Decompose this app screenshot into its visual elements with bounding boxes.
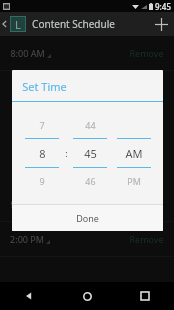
button[interactable]: 7 [25,112,59,194]
button[interactable]: 44 [73,112,107,194]
button[interactable]: Navigate up [0,12,10,36]
button[interactable]: Remove [129,47,164,59]
staticText: 44 [85,119,96,131]
staticText: : [65,147,68,159]
button[interactable]: Remove [129,198,164,210]
button[interactable]: Remove [129,233,164,245]
button[interactable]: Home [58,282,116,310]
staticText: PM [127,175,141,187]
staticText: 8 [39,146,46,161]
staticText: 8:00 AM [10,47,45,59]
button[interactable]: Done [12,205,163,231]
staticText: 9:45 [155,1,171,12]
staticText: Set Time [22,79,67,94]
button[interactable]: Add [148,12,174,36]
button[interactable]: 9:30 AM [0,187,174,221]
button[interactable]: Back [0,282,58,310]
staticText: 9:30 AM [10,198,45,210]
staticText: Remove [129,198,164,210]
staticText: L [15,17,21,32]
button[interactable]: Recent apps [116,282,174,310]
staticText: Done [76,212,99,224]
button[interactable]: 8:00 AM [0,36,174,70]
staticText: 2:00 PM [10,233,44,245]
staticText: Remove [129,233,164,245]
staticText: 46 [85,175,96,187]
staticText: Remove [129,47,164,59]
staticText: 7 [39,119,45,131]
button[interactable]: 2:00 PM [0,222,174,256]
staticText: 9 [39,175,45,187]
staticText: AM [125,146,143,161]
staticText: Content Schedule [32,17,115,31]
staticText: 45 [84,146,97,161]
button[interactable]: AM [117,112,151,194]
